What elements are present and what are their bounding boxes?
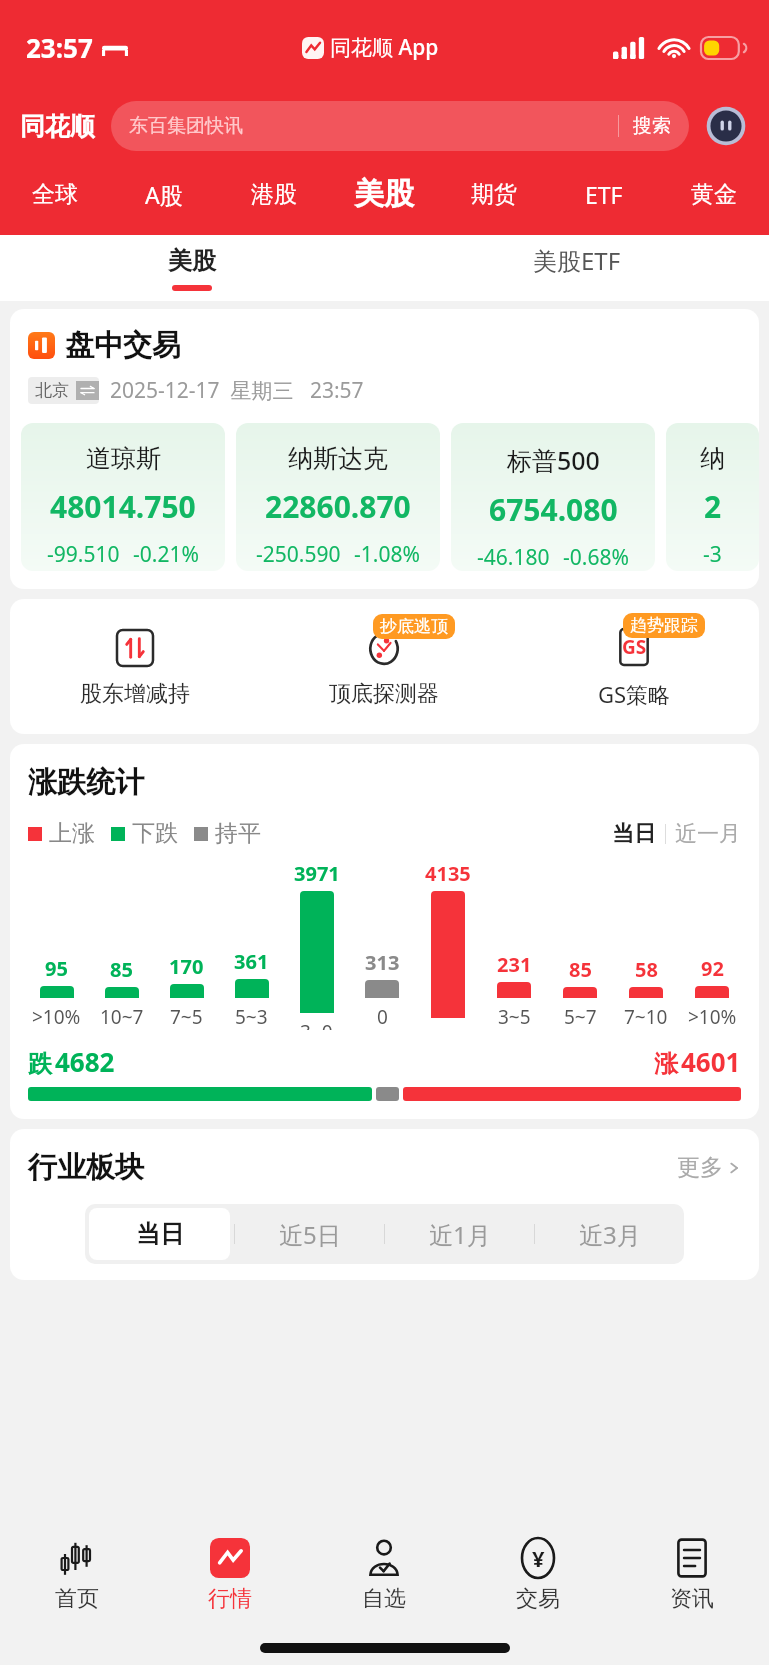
staticText: 顶底探测器 bbox=[329, 680, 439, 708]
staticText: 58 bbox=[635, 956, 658, 983]
staticText: 涨跌统计 bbox=[28, 764, 144, 801]
staticText: 313 bbox=[365, 949, 400, 976]
staticText: 0 bbox=[377, 1004, 388, 1030]
staticText: -0.21% bbox=[133, 540, 199, 569]
staticText: 北京 bbox=[35, 380, 69, 401]
staticText: 2 bbox=[704, 486, 722, 527]
staticText: 361 bbox=[234, 948, 269, 975]
staticText: 股东增减持 bbox=[80, 680, 190, 708]
staticText: 资讯 bbox=[670, 1585, 714, 1613]
staticText: 近5日 bbox=[279, 1218, 341, 1251]
button[interactable]: 美股ETF bbox=[384, 235, 769, 301]
staticText: 4682 bbox=[55, 1044, 115, 1079]
staticText: 3~5 bbox=[498, 1004, 531, 1030]
staticText: >10% bbox=[688, 1004, 737, 1030]
button[interactable]: AI Assistant bbox=[703, 103, 749, 149]
staticText: 231 bbox=[497, 951, 532, 978]
button[interactable]: ¥ bbox=[461, 1519, 615, 1631]
button[interactable]: 东百集团快讯 bbox=[111, 101, 689, 151]
button[interactable]: 全球 bbox=[0, 163, 109, 225]
staticText: -46.180 bbox=[477, 543, 550, 571]
staticText: -3 bbox=[703, 540, 722, 569]
staticText: -250.590 bbox=[256, 540, 341, 569]
staticText: 标普500 bbox=[507, 443, 600, 477]
staticText: 2025-12-17 星期三 23:57 bbox=[110, 376, 364, 405]
button[interactable]: 期货 bbox=[439, 163, 549, 225]
staticText: 4601 bbox=[681, 1044, 741, 1079]
button[interactable]: 更多 bbox=[677, 1153, 741, 1182]
button[interactable]: 近5日 bbox=[239, 1208, 380, 1260]
button[interactable]: 近一月 bbox=[675, 820, 741, 848]
button[interactable]: 近1月 bbox=[389, 1208, 530, 1260]
staticText: 抄底逃顶 bbox=[380, 616, 448, 637]
staticText: GS bbox=[622, 634, 647, 660]
button[interactable]: 美股 bbox=[0, 235, 384, 301]
button[interactable]: 近3月 bbox=[539, 1208, 680, 1260]
staticText: 交易 bbox=[516, 1585, 560, 1613]
button[interactable]: 抄底逃顶 bbox=[259, 599, 509, 734]
staticText: 行情 bbox=[208, 1585, 252, 1613]
staticText: 近一月 bbox=[675, 820, 741, 848]
staticText: -99.510 bbox=[47, 540, 120, 569]
button[interactable]: 港股 bbox=[219, 163, 329, 225]
button[interactable]: 标普500 bbox=[451, 423, 655, 571]
staticText: 170 bbox=[169, 953, 204, 980]
staticText: 趋势跟踪 bbox=[630, 615, 698, 636]
staticText: A股 bbox=[145, 179, 183, 210]
button[interactable]: 纳斯达克 bbox=[236, 423, 440, 571]
staticText: 黄金 bbox=[691, 180, 737, 209]
button[interactable]: 行情 bbox=[153, 1519, 307, 1631]
staticText: 道琼斯 bbox=[86, 443, 161, 474]
staticText: 搜索 bbox=[633, 114, 671, 138]
staticText: ¥ bbox=[532, 1543, 545, 1573]
staticText: 92 bbox=[701, 955, 724, 982]
staticText: 95 bbox=[45, 955, 68, 982]
staticText: 3971 bbox=[294, 860, 340, 887]
staticText: 持平 bbox=[215, 819, 261, 848]
staticText: 期货 bbox=[471, 180, 517, 209]
button[interactable]: 当日 bbox=[89, 1208, 230, 1260]
staticText: 纳斯达克 bbox=[288, 443, 388, 474]
button[interactable]: ETF bbox=[549, 163, 659, 225]
staticText: 3~0 bbox=[300, 1019, 333, 1030]
button[interactable]: 股东增减持 bbox=[10, 599, 259, 734]
staticText: 7~5 bbox=[170, 1004, 203, 1030]
button[interactable]: 首页 bbox=[0, 1519, 153, 1631]
button[interactable]: 自选 bbox=[307, 1519, 461, 1631]
staticText: 纳 bbox=[700, 443, 725, 474]
staticText: -0.68% bbox=[563, 543, 629, 571]
staticText: 同花顺 App bbox=[330, 33, 439, 62]
staticText: 85 bbox=[110, 956, 133, 983]
staticText: GS策略 bbox=[598, 679, 671, 709]
staticText: 5~3 bbox=[235, 1004, 268, 1030]
staticText: 当日 bbox=[612, 820, 656, 848]
staticText: 港股 bbox=[251, 180, 297, 209]
staticText: 22860.870 bbox=[265, 486, 411, 527]
staticText: 当日 bbox=[136, 1219, 184, 1249]
staticText: 近1月 bbox=[429, 1218, 491, 1251]
staticText: 4135 bbox=[425, 860, 471, 887]
button[interactable]: 黄金 bbox=[659, 163, 769, 225]
staticText: 7~10 bbox=[624, 1004, 668, 1030]
button[interactable]: GS bbox=[509, 599, 759, 734]
staticText: 更多 bbox=[677, 1153, 723, 1182]
button[interactable]: A股 bbox=[109, 163, 219, 225]
staticText: 近3月 bbox=[579, 1218, 641, 1251]
button[interactable]: 纳 bbox=[666, 423, 759, 571]
staticText: 自选 bbox=[362, 1585, 406, 1613]
staticText: 48014.750 bbox=[50, 486, 196, 527]
button[interactable]: 北京 bbox=[28, 377, 99, 404]
staticText: 85 bbox=[569, 956, 592, 983]
staticText: 6754.080 bbox=[489, 489, 618, 530]
staticText: 跌 bbox=[28, 1049, 52, 1079]
button[interactable]: 当日 bbox=[612, 820, 656, 848]
staticText: ETF bbox=[585, 179, 623, 210]
staticText: 美股ETF bbox=[533, 244, 621, 277]
staticText: >10% bbox=[32, 1004, 81, 1030]
button[interactable]: 资讯 bbox=[615, 1519, 769, 1631]
staticText: 行业板块 bbox=[28, 1149, 144, 1186]
button[interactable]: 道琼斯 bbox=[21, 423, 225, 571]
staticText: 美股 bbox=[168, 246, 216, 276]
button[interactable]: 美股 bbox=[329, 163, 439, 225]
staticText: 美股 bbox=[354, 175, 414, 213]
